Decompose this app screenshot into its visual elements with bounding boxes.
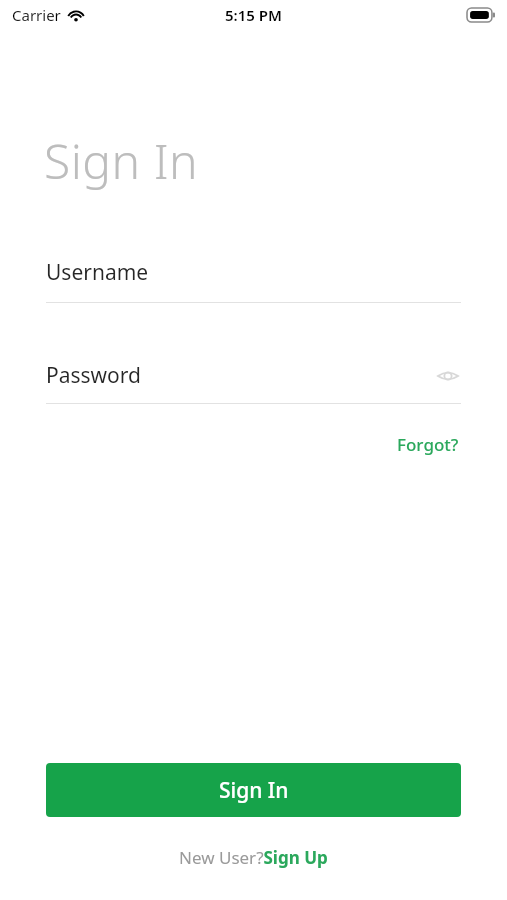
- staticText: Carrier: [12, 5, 61, 25]
- button[interactable]: Sign In: [46, 763, 461, 817]
- button[interactable]: Show password: [435, 363, 461, 389]
- staticText: Sign In: [44, 128, 199, 193]
- staticText: Password: [46, 361, 141, 390]
- staticText: Forgot?: [397, 433, 459, 456]
- staticText: Sign In: [219, 776, 289, 805]
- button[interactable]: Username: [46, 258, 461, 303]
- button[interactable]: Forgot?: [395, 430, 461, 459]
- button[interactable]: Password: [46, 361, 461, 390]
- staticText: 5:15 PM: [225, 5, 282, 25]
- staticText: Username: [46, 258, 149, 287]
- staticText: New User?Sign Up: [179, 846, 328, 869]
- button[interactable]: New User?Sign Up: [179, 846, 328, 869]
